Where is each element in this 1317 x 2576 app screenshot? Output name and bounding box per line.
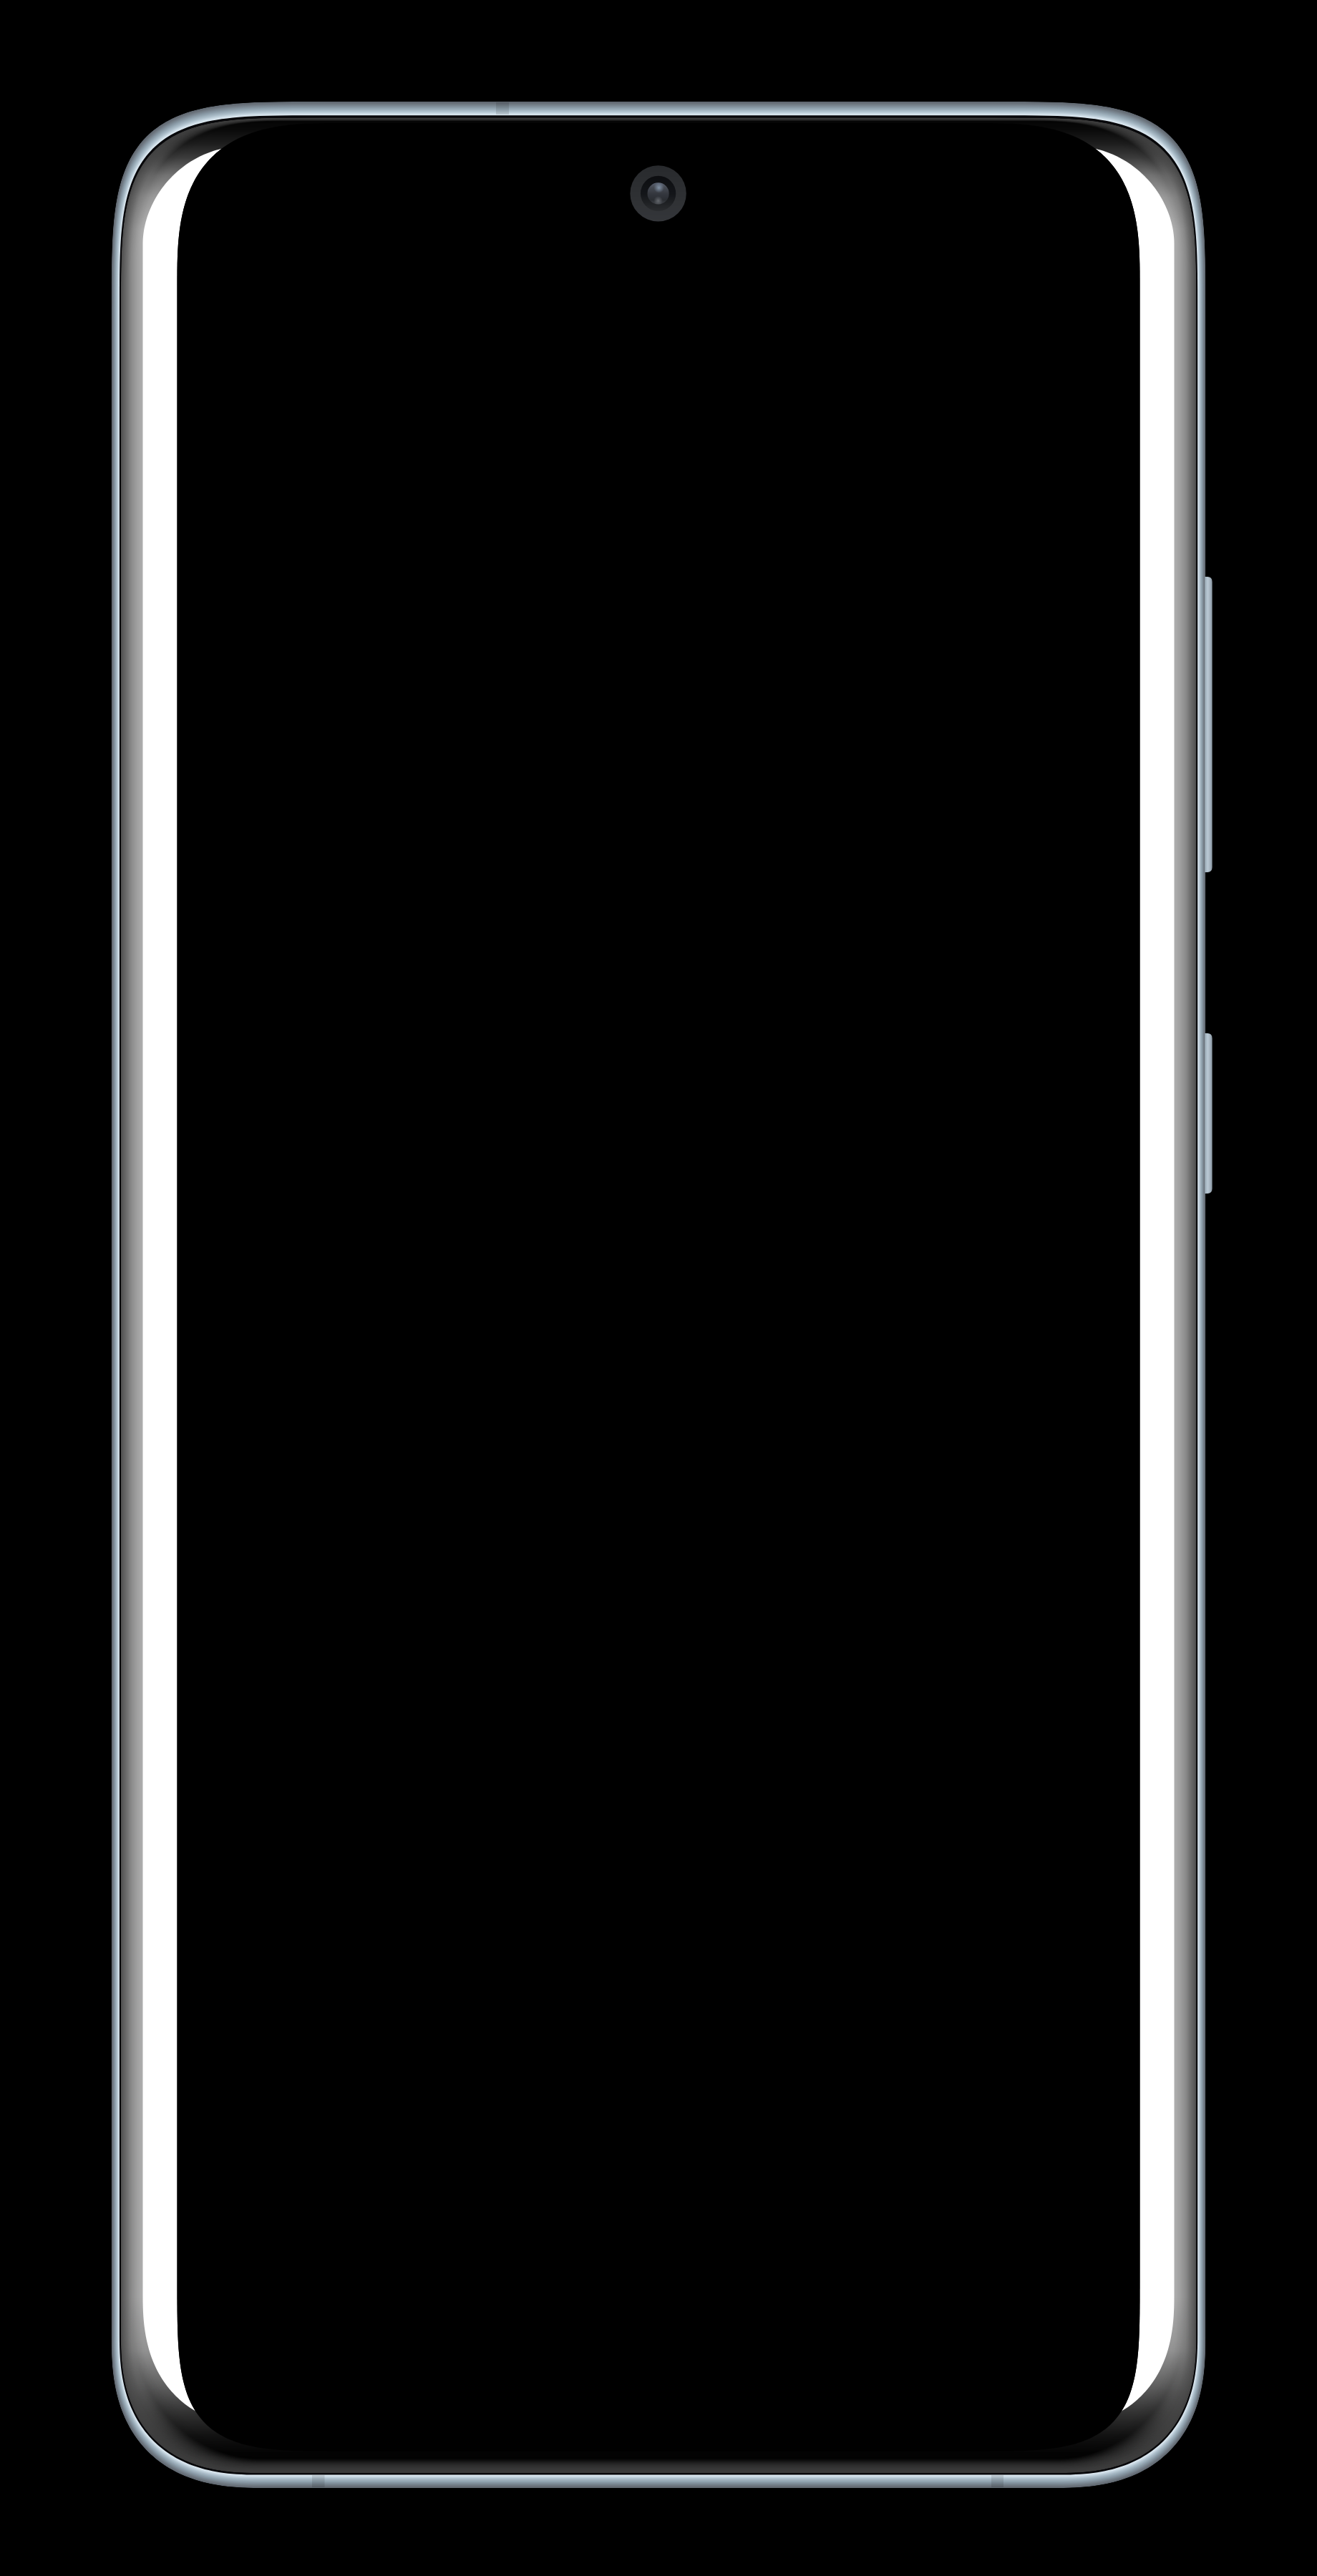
button[interactable]: Volume buttons <box>1188 577 1212 872</box>
button[interactable]: Phone display <box>178 123 1140 2451</box>
button[interactable]: Power button <box>1188 1033 1212 1194</box>
